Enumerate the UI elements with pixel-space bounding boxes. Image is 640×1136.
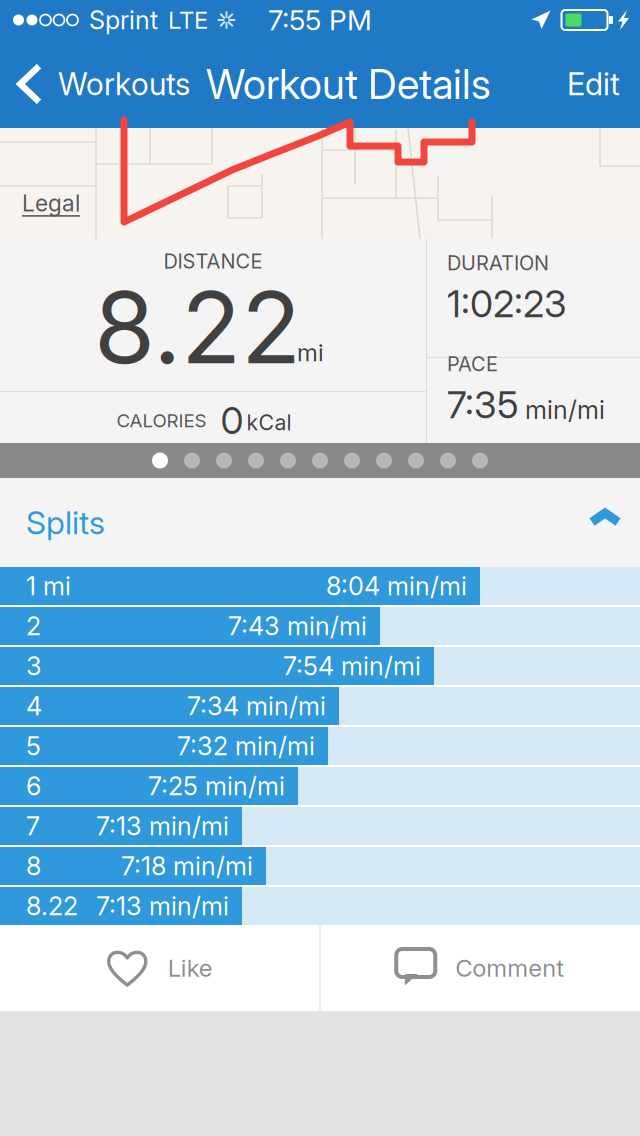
staticText: min/mi [525, 394, 605, 425]
staticText: 7:54 [283, 651, 334, 681]
staticText: 0 [220, 398, 243, 443]
staticText: 5 [26, 731, 41, 761]
staticText: min/mi [287, 611, 367, 641]
staticText: 7:32 [177, 731, 228, 761]
staticText: min/mi [205, 771, 285, 801]
staticText: 7:13 [96, 891, 142, 921]
staticText: PACE [447, 352, 498, 376]
staticText: 4 [26, 691, 42, 721]
button[interactable]: Splits [0, 478, 640, 567]
staticText: 7:43 [228, 611, 280, 641]
staticText: min/mi [387, 571, 467, 601]
button[interactable]: Comment [320, 925, 640, 1011]
staticText: 7:13 [96, 811, 142, 841]
staticText: LTE [168, 5, 208, 34]
staticText: 1 mi [26, 571, 71, 601]
staticText: min/mi [246, 691, 326, 721]
staticText: 8.22 [26, 891, 78, 921]
staticText: 7:25 [148, 771, 198, 801]
staticText: kCal [246, 410, 291, 435]
staticText: 6 [26, 771, 41, 801]
staticText: DISTANCE [163, 249, 262, 273]
staticText: 2 [26, 611, 41, 641]
staticText: CALORIES [116, 409, 206, 432]
button[interactable]: Like [0, 925, 319, 1011]
button[interactable]: Edit [547, 40, 640, 128]
staticText: Comment [455, 953, 564, 982]
staticText: min/mi [149, 891, 229, 921]
staticText: 3 [26, 651, 42, 681]
staticText: 7:55 PM [268, 3, 372, 37]
button[interactable]: Workouts [0, 40, 194, 128]
staticText: Workout Details [206, 59, 491, 109]
staticText: Splits [26, 503, 105, 542]
staticText: 8.22 [94, 268, 301, 387]
staticText: 7 [26, 811, 40, 841]
staticText: mi [297, 338, 324, 367]
staticText: min/mi [149, 811, 229, 841]
staticText: Like [168, 953, 213, 982]
staticText: 7:35 [447, 382, 519, 427]
staticText: 7:34 [187, 691, 239, 721]
staticText: Sprint [89, 5, 158, 35]
staticText: Legal [22, 190, 80, 217]
staticText: min/mi [235, 731, 315, 761]
staticText: 8 [26, 851, 41, 881]
staticText: Edit [567, 65, 620, 102]
staticText: Workouts [58, 65, 190, 102]
staticText: 7:18 [121, 851, 166, 881]
staticText: 1:02:23 [447, 281, 567, 326]
staticText: min/mi [341, 651, 421, 681]
staticText: min/mi [173, 851, 253, 881]
staticText: DURATION [447, 251, 549, 275]
staticText: 8:04 [326, 571, 380, 601]
